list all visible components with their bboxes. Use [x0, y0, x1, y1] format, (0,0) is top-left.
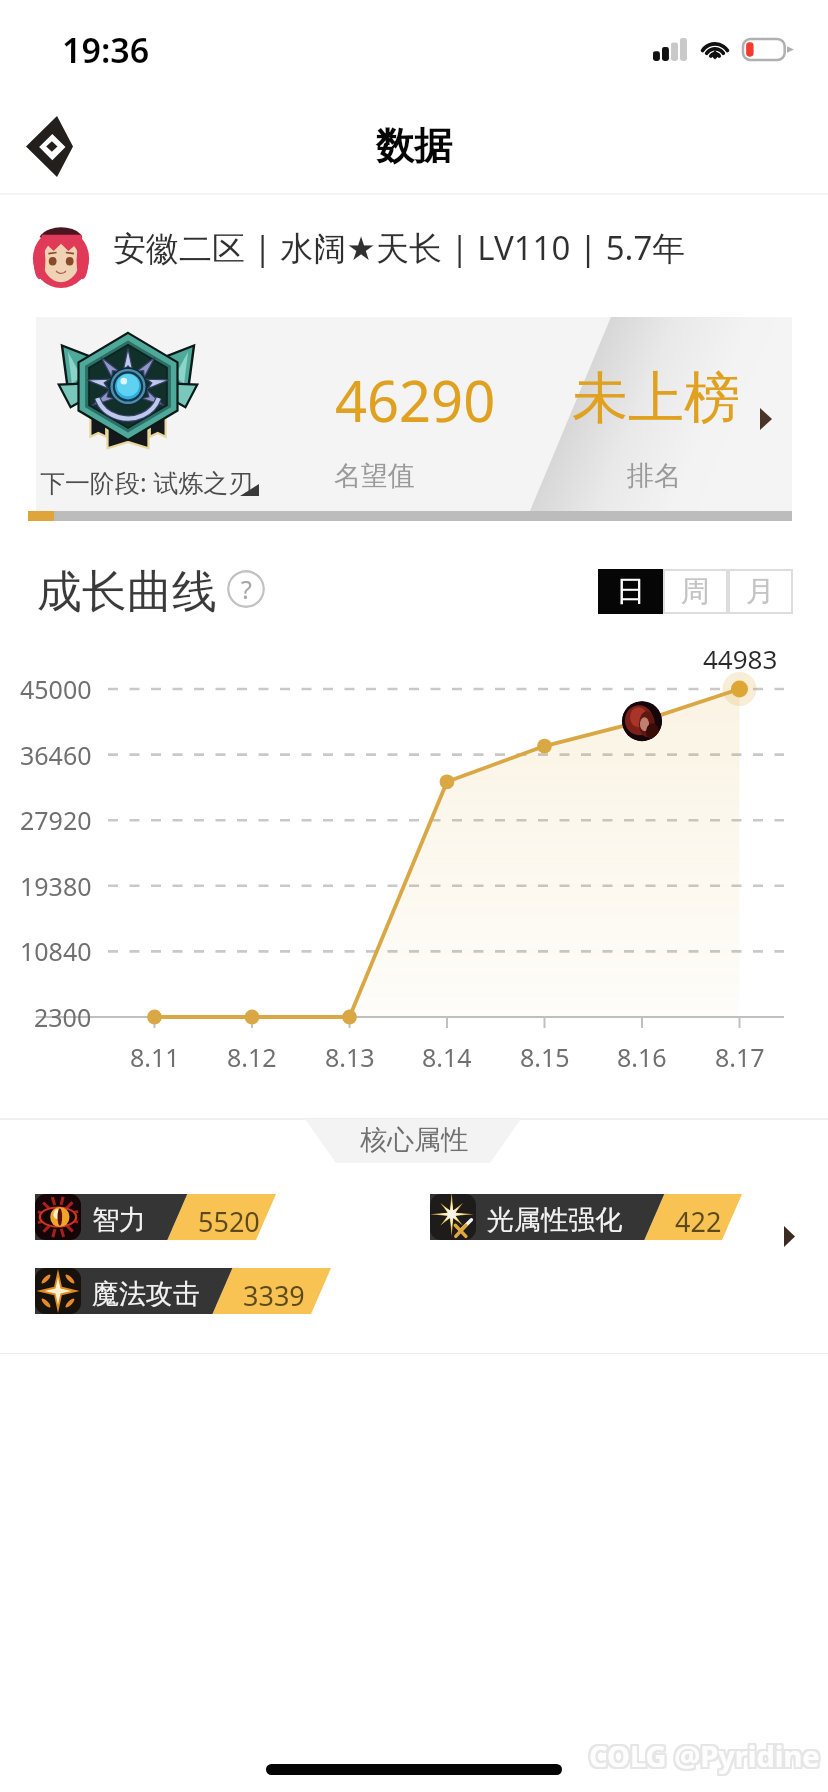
- staticText: 45000: [20, 672, 92, 706]
- staticText: 422: [675, 1203, 722, 1240]
- staticText: COLG @Pyridine: [591, 1734, 822, 1773]
- staticText: COLG @Pyridine: [591, 1736, 822, 1775]
- staticText: COLG @Pyridine: [587, 1734, 818, 1773]
- staticText: 核心属性: [360, 1123, 468, 1157]
- staticText: 8.16: [617, 1040, 667, 1074]
- staticText: 成长曲线: [37, 564, 217, 621]
- staticText: 8.14: [422, 1040, 472, 1074]
- button[interactable]: More attributes: [766, 1218, 812, 1254]
- button[interactable]: 光属性强化: [430, 1194, 742, 1240]
- button[interactable]: 智力: [35, 1194, 276, 1240]
- button[interactable]: 日: [598, 569, 663, 614]
- staticText: 10840: [20, 934, 92, 968]
- button[interactable]: 安徽二区 | 水阔★天长 | LV110 | 5.7年: [0, 198, 828, 298]
- staticText: 19380: [20, 869, 92, 903]
- staticText: 智力: [92, 1203, 146, 1237]
- staticText: COLG @Pyridine: [589, 1738, 820, 1777]
- staticText: 魔法攻击: [92, 1277, 200, 1311]
- staticText: 安徽二区 | 水阔★天长 | LV110 | 5.7年: [113, 225, 686, 270]
- staticText: 8.17: [715, 1040, 765, 1074]
- staticText: 名望值: [334, 459, 415, 493]
- staticText: 36460: [20, 738, 92, 772]
- staticText: COLG @Pyridine: [587, 1738, 818, 1777]
- staticText: 日: [616, 573, 645, 610]
- button[interactable]: 周: [663, 569, 728, 614]
- staticText: 2300: [34, 1000, 92, 1034]
- staticText: 月: [746, 573, 775, 610]
- staticText: 周: [681, 573, 710, 610]
- button[interactable]: Help: [227, 570, 265, 608]
- staticText: 5520: [198, 1203, 260, 1240]
- staticText: COLG @Pyridine: [587, 1736, 818, 1775]
- staticText: 数据: [376, 122, 452, 170]
- staticText: 8.15: [520, 1040, 570, 1074]
- button[interactable]: Menu: [9, 106, 89, 186]
- staticText: 8.13: [325, 1040, 375, 1074]
- staticText: 排名: [627, 459, 681, 493]
- staticText: 光属性强化: [487, 1203, 622, 1237]
- staticText: 46290: [335, 362, 496, 438]
- button[interactable]: 月: [728, 569, 793, 614]
- button[interactable]: 下一阶段: 试炼之刃: [36, 317, 792, 511]
- staticText: 3339: [243, 1277, 305, 1314]
- staticText: 8.11: [130, 1040, 180, 1074]
- staticText: 27920: [20, 803, 92, 837]
- staticText: COLG @Pyridine: [589, 1736, 820, 1775]
- staticText: ?: [241, 572, 252, 606]
- staticText: 8.12: [227, 1040, 277, 1074]
- staticText: 44983: [703, 641, 778, 676]
- staticText: COLG @Pyridine: [591, 1738, 822, 1777]
- staticText: COLG @Pyridine: [589, 1734, 820, 1773]
- staticText: 19:36: [62, 27, 150, 73]
- staticText: 下一阶段: 试炼之刃: [40, 465, 254, 499]
- staticText: 未上榜: [572, 363, 740, 434]
- button[interactable]: 魔法攻击: [35, 1268, 331, 1314]
